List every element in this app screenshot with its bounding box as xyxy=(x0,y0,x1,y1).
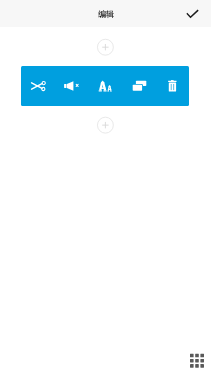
button[interactable]: Mute xyxy=(54,66,87,106)
button[interactable]: Add xyxy=(96,38,114,56)
staticText: 编辑 xyxy=(98,9,114,19)
button[interactable]: Done xyxy=(182,4,202,24)
button[interactable]: Add xyxy=(96,116,114,134)
button[interactable]: Delete xyxy=(155,66,189,106)
button[interactable]: More tools xyxy=(186,350,208,372)
button[interactable]: Text size xyxy=(87,66,121,106)
button[interactable]: Cut xyxy=(21,66,54,106)
button[interactable]: Duplicate xyxy=(121,66,155,106)
